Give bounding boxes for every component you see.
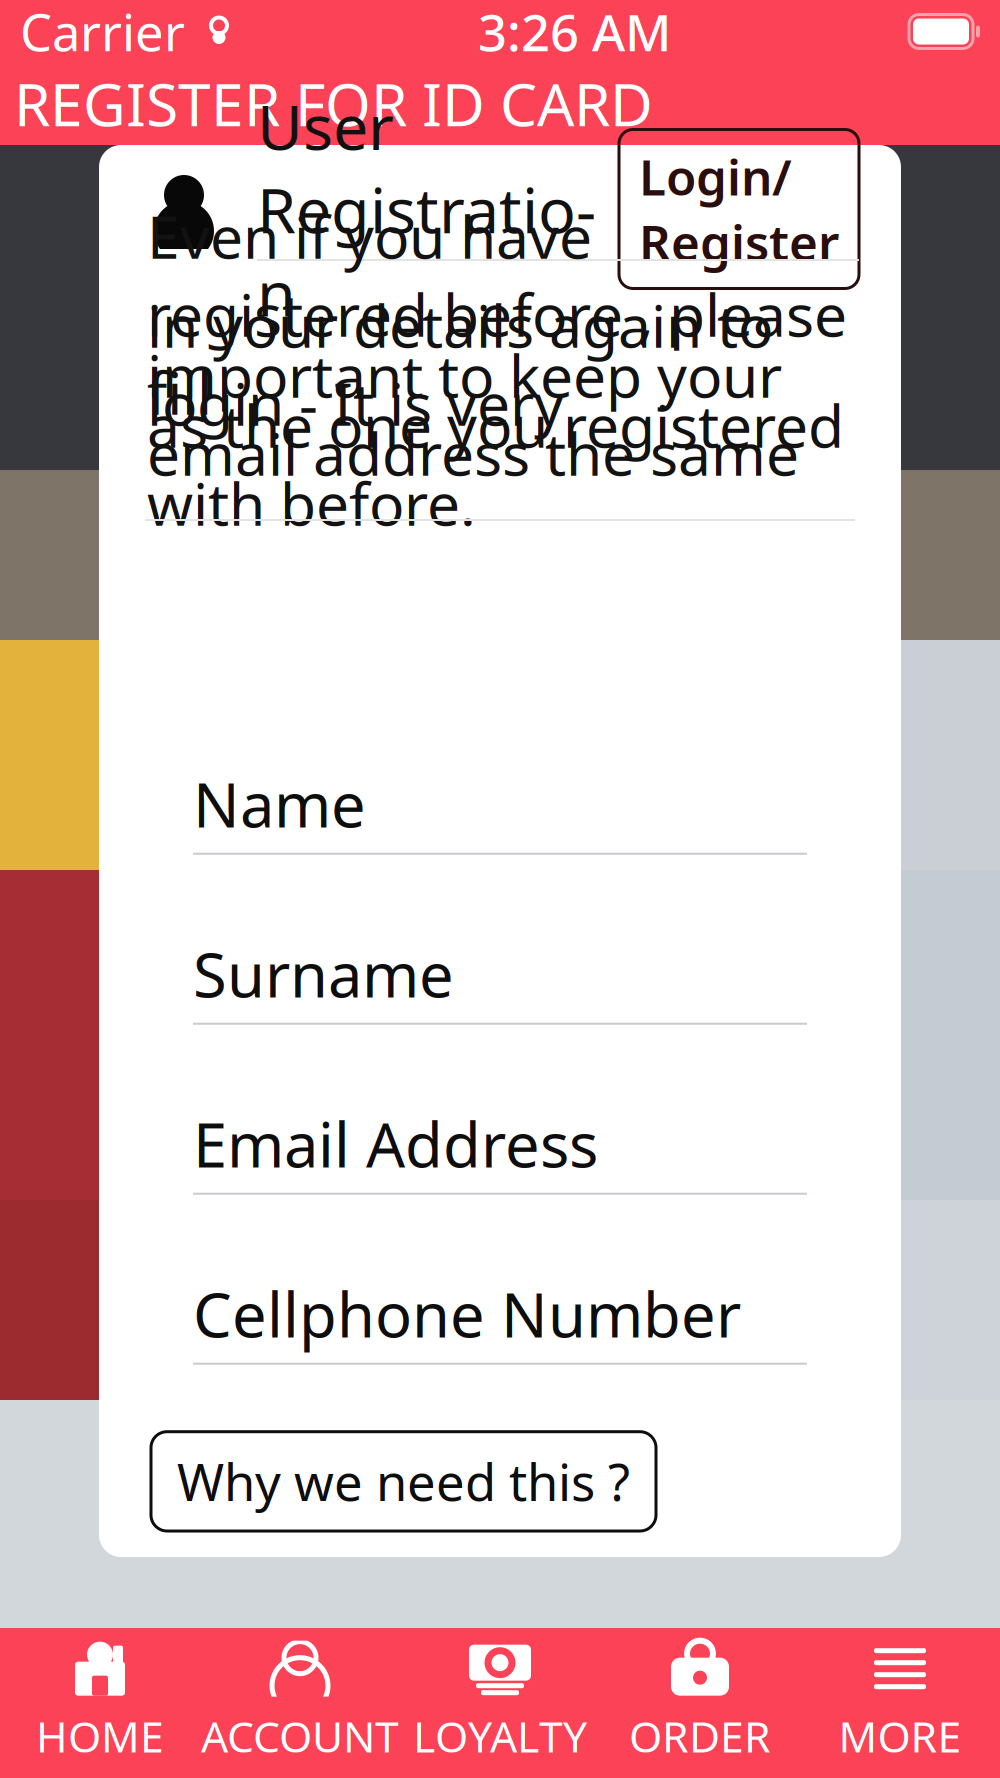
staticText: as the one you registered with before. [147, 386, 844, 542]
staticText: User Registration [257, 84, 596, 334]
staticText: in your details again to login - It is v… [147, 286, 773, 442]
staticText: Surname [193, 933, 454, 1014]
button[interactable]: Why we need this ? [151, 1432, 656, 1531]
staticText: MORE [838, 1708, 961, 1764]
staticText: REGISTER FOR ID CARD [14, 64, 653, 142]
button[interactable]: Login/Register [619, 129, 859, 288]
staticText: LOYALTY [413, 1708, 587, 1764]
staticText: ORDER [629, 1708, 771, 1764]
button[interactable]: HOME [0, 1628, 200, 1778]
staticText: HOME [36, 1708, 164, 1764]
staticText: Login/Register [639, 143, 839, 274]
button[interactable]: MORE [800, 1628, 1000, 1778]
staticText: 3:26 AM [478, 0, 672, 65]
staticText: Carrier [20, 0, 185, 65]
staticText: Cellphone Number [193, 1273, 741, 1354]
staticText: Name [193, 763, 366, 844]
staticText: Even if you have registered before , ple… [147, 197, 847, 431]
button[interactable]: ORDER [600, 1628, 800, 1778]
button[interactable]: ACCOUNT [200, 1628, 400, 1778]
staticText: Email Address [193, 1103, 598, 1184]
staticText: Why we need this ? [177, 1448, 630, 1515]
staticText: ACCOUNT [201, 1708, 399, 1764]
button[interactable]: LOYALTY [400, 1628, 600, 1778]
staticText: important to keep your email address the… [147, 336, 799, 492]
